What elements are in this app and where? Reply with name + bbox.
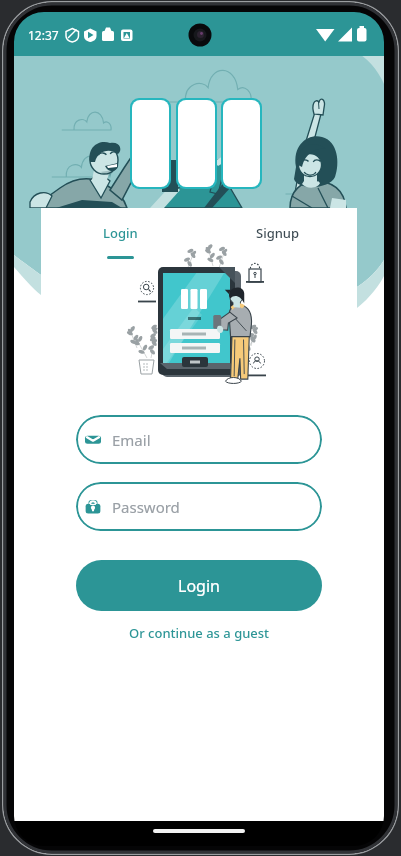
staticText: 12:37: [28, 27, 59, 43]
staticText: Login: [103, 224, 138, 242]
staticText: Signup: [256, 224, 300, 242]
button[interactable]: Email: [76, 415, 322, 464]
staticText: Login: [178, 575, 220, 597]
staticText: Password: [112, 497, 180, 517]
staticText: Email: [112, 430, 151, 450]
staticText: Or continue as a guest: [129, 624, 270, 642]
button[interactable]: Or continue as a guest: [76, 624, 322, 642]
button[interactable]: Login: [76, 560, 322, 611]
button[interactable]: Signup: [199, 208, 357, 270]
button[interactable]: Password: [76, 482, 322, 531]
button[interactable]: Login: [41, 208, 199, 270]
